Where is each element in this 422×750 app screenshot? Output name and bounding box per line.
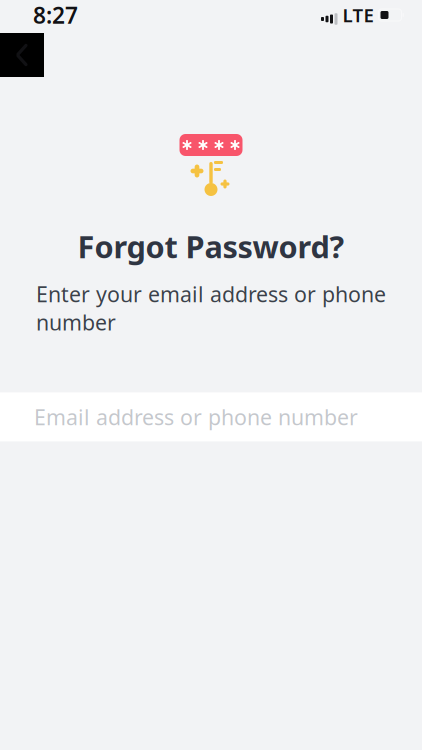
button[interactable]: Email address or phone number bbox=[0, 392, 422, 441]
staticText: LTE bbox=[342, 3, 373, 27]
staticText: Enter your email address or phone number bbox=[36, 280, 386, 336]
staticText: Forgot Password? bbox=[77, 226, 344, 267]
button[interactable]: Back bbox=[0, 33, 44, 77]
staticText: 8:27 bbox=[33, 0, 78, 30]
staticText: Email address or phone number bbox=[34, 403, 358, 431]
